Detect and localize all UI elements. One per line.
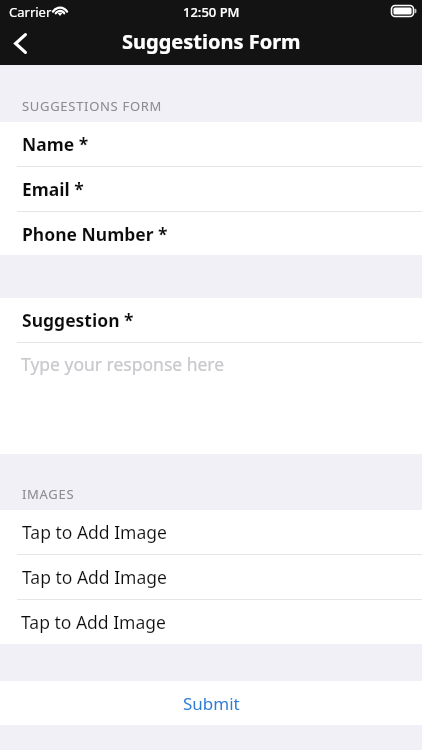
staticText: 12:50 PM	[183, 3, 240, 21]
staticText: Type your response here	[21, 352, 225, 376]
button[interactable]: Type your response here	[0, 343, 422, 454]
button[interactable]: Phone Number *	[0, 212, 422, 255]
staticText: Carrier	[9, 3, 52, 21]
button[interactable]: Name *	[0, 122, 422, 166]
staticText: IMAGES	[22, 485, 75, 503]
staticText: Tap to Add Image	[21, 610, 166, 634]
staticText: Suggestion *	[22, 308, 134, 332]
staticText: Suggestions Form	[122, 28, 301, 55]
staticText: Email *	[22, 177, 84, 201]
staticText: Tap to Add Image	[22, 520, 167, 544]
button[interactable]: Tap to Add Image	[0, 555, 422, 599]
staticText: Tap to Add Image	[22, 565, 167, 589]
button[interactable]: Email *	[0, 167, 422, 211]
button[interactable]: Tap to Add Image	[0, 600, 422, 644]
button[interactable]: Submit	[0, 681, 422, 725]
button[interactable]: Tap to Add Image	[0, 510, 422, 554]
staticText: Name *	[22, 132, 89, 156]
button[interactable]: Suggestion *	[0, 298, 422, 342]
staticText: Phone Number *	[22, 222, 168, 246]
staticText: Submit	[183, 692, 240, 715]
staticText: SUGGESTIONS FORM	[22, 97, 163, 115]
button[interactable]: Back	[0, 21, 40, 65]
